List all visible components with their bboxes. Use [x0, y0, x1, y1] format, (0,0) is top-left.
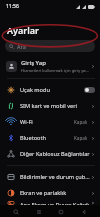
button[interactable]: SIM kart ve mobil veri [0, 98, 100, 114]
button[interactable]: Ekran ve parlaklık [0, 185, 100, 201]
button[interactable]: Diğer Kablosuz Bağlantılar [0, 146, 100, 162]
staticText: Ana Ekran ve Duvar Kağıdı [20, 201, 90, 205]
staticText: Bluetooth [20, 134, 74, 142]
staticText: Ekran ve parlaklık [20, 189, 90, 197]
staticText: Kapalı [74, 119, 88, 125]
button[interactable]: Uçak modu [0, 82, 100, 98]
button[interactable]: Ara [5, 40, 95, 52]
button[interactable]: Geri [77, 206, 91, 217]
staticText: SIM kart ve mobil veri [20, 102, 90, 110]
button[interactable]: Son uygulamalar [32, 206, 46, 217]
button[interactable]: Uçak modu aç [84, 87, 95, 93]
staticText: Diğer Kablosuz Bağlantılar [20, 150, 90, 158]
staticText: Hizmetleri kullanmak için giriş yapın [21, 68, 90, 74]
staticText: 11:56 [6, 3, 19, 10]
button[interactable]: Ana ekran [54, 206, 68, 217]
staticText: Ara [17, 43, 26, 50]
staticText: Uçak modu [20, 86, 84, 94]
staticText: Ayarlar [7, 24, 39, 36]
staticText: Giriş Yap [21, 59, 46, 67]
staticText: Bildirimler ve durum çubuğu [20, 173, 90, 181]
button[interactable]: Ana Ekran ve Duvar Kağıdı [0, 201, 100, 205]
button[interactable]: Giriş Yap [0, 57, 100, 75]
button[interactable]: Bluetooth [0, 130, 100, 146]
button[interactable]: Ara [9, 206, 23, 217]
staticText: Kapalı [74, 135, 88, 141]
staticText: Wi-Fi [20, 118, 74, 126]
button[interactable]: Bildirimler ve durum çubuğu [0, 169, 100, 185]
button[interactable]: Wi-Fi [0, 114, 100, 130]
